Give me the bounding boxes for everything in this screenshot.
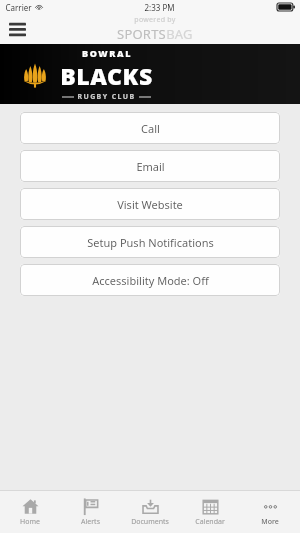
staticText: Home <box>20 517 40 527</box>
button[interactable]: Documents <box>120 494 180 530</box>
staticText: 2:33 PM <box>144 2 175 13</box>
staticText: Setup Push Notifications <box>87 235 214 250</box>
button[interactable]: Home <box>0 494 60 530</box>
staticText: RUGBY CLUB <box>77 92 136 102</box>
staticText: Alerts <box>81 517 100 527</box>
staticText: BOWRAL <box>82 47 132 59</box>
button[interactable]: Accessibility Mode: Off <box>20 264 280 296</box>
staticText: BAG <box>166 25 193 43</box>
staticText: Call <box>141 121 160 136</box>
staticText: Email <box>136 159 165 174</box>
staticText: Accessibility Mode: Off <box>92 273 209 288</box>
button[interactable]: Alerts <box>60 494 120 530</box>
button[interactable]: More <box>240 494 300 530</box>
button[interactable]: Call <box>20 112 280 144</box>
staticText: SPORTS <box>117 25 166 43</box>
staticText: powered by <box>134 15 176 25</box>
staticText: Visit Website <box>117 197 183 212</box>
staticText: Documents <box>131 517 169 527</box>
staticText: More <box>261 517 279 527</box>
button[interactable]: Visit Website <box>20 188 280 220</box>
staticText: Carrier <box>5 2 32 13</box>
button[interactable]: Menu <box>4 16 30 42</box>
button[interactable]: Email <box>20 150 280 182</box>
staticText: Calendar <box>195 517 225 527</box>
button[interactable]: Calendar <box>180 494 240 530</box>
staticText: BLACKS <box>60 60 153 91</box>
button[interactable]: Setup Push Notifications <box>20 226 280 258</box>
